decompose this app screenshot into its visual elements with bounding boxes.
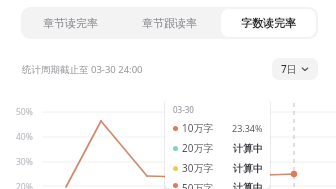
staticText: 7日 — [281, 62, 297, 76]
staticText: 50% — [16, 106, 33, 118]
button[interactable]: 章节跟读率 — [122, 9, 217, 37]
staticText: 40% — [16, 131, 33, 143]
staticText: 章节跟读率 — [142, 16, 197, 30]
other: Expand period selector — [301, 65, 309, 73]
staticText: 章节读完率 — [43, 16, 98, 30]
staticText: 50万字 — [182, 181, 214, 189]
staticText: 10万字 — [182, 121, 214, 135]
staticText: 30% — [16, 156, 33, 168]
staticText: 03-30 — [173, 104, 194, 115]
staticText: 20万字 — [182, 141, 214, 155]
staticText: 23.34% — [232, 122, 263, 134]
staticText: 30万字 — [182, 161, 214, 175]
button[interactable]: 字数读完率 — [221, 9, 316, 37]
staticText: 计算中 — [233, 142, 263, 155]
staticText: 统计周期截止至 03-30 24:00 — [22, 63, 143, 76]
staticText: 字数读完率 — [241, 16, 296, 30]
staticText: 计算中 — [233, 181, 263, 189]
button[interactable]: 7日 — [272, 58, 318, 80]
button[interactable]: 章节读完率 — [23, 9, 118, 37]
staticText: 计算中 — [233, 162, 263, 175]
staticText: 20% — [16, 181, 33, 189]
